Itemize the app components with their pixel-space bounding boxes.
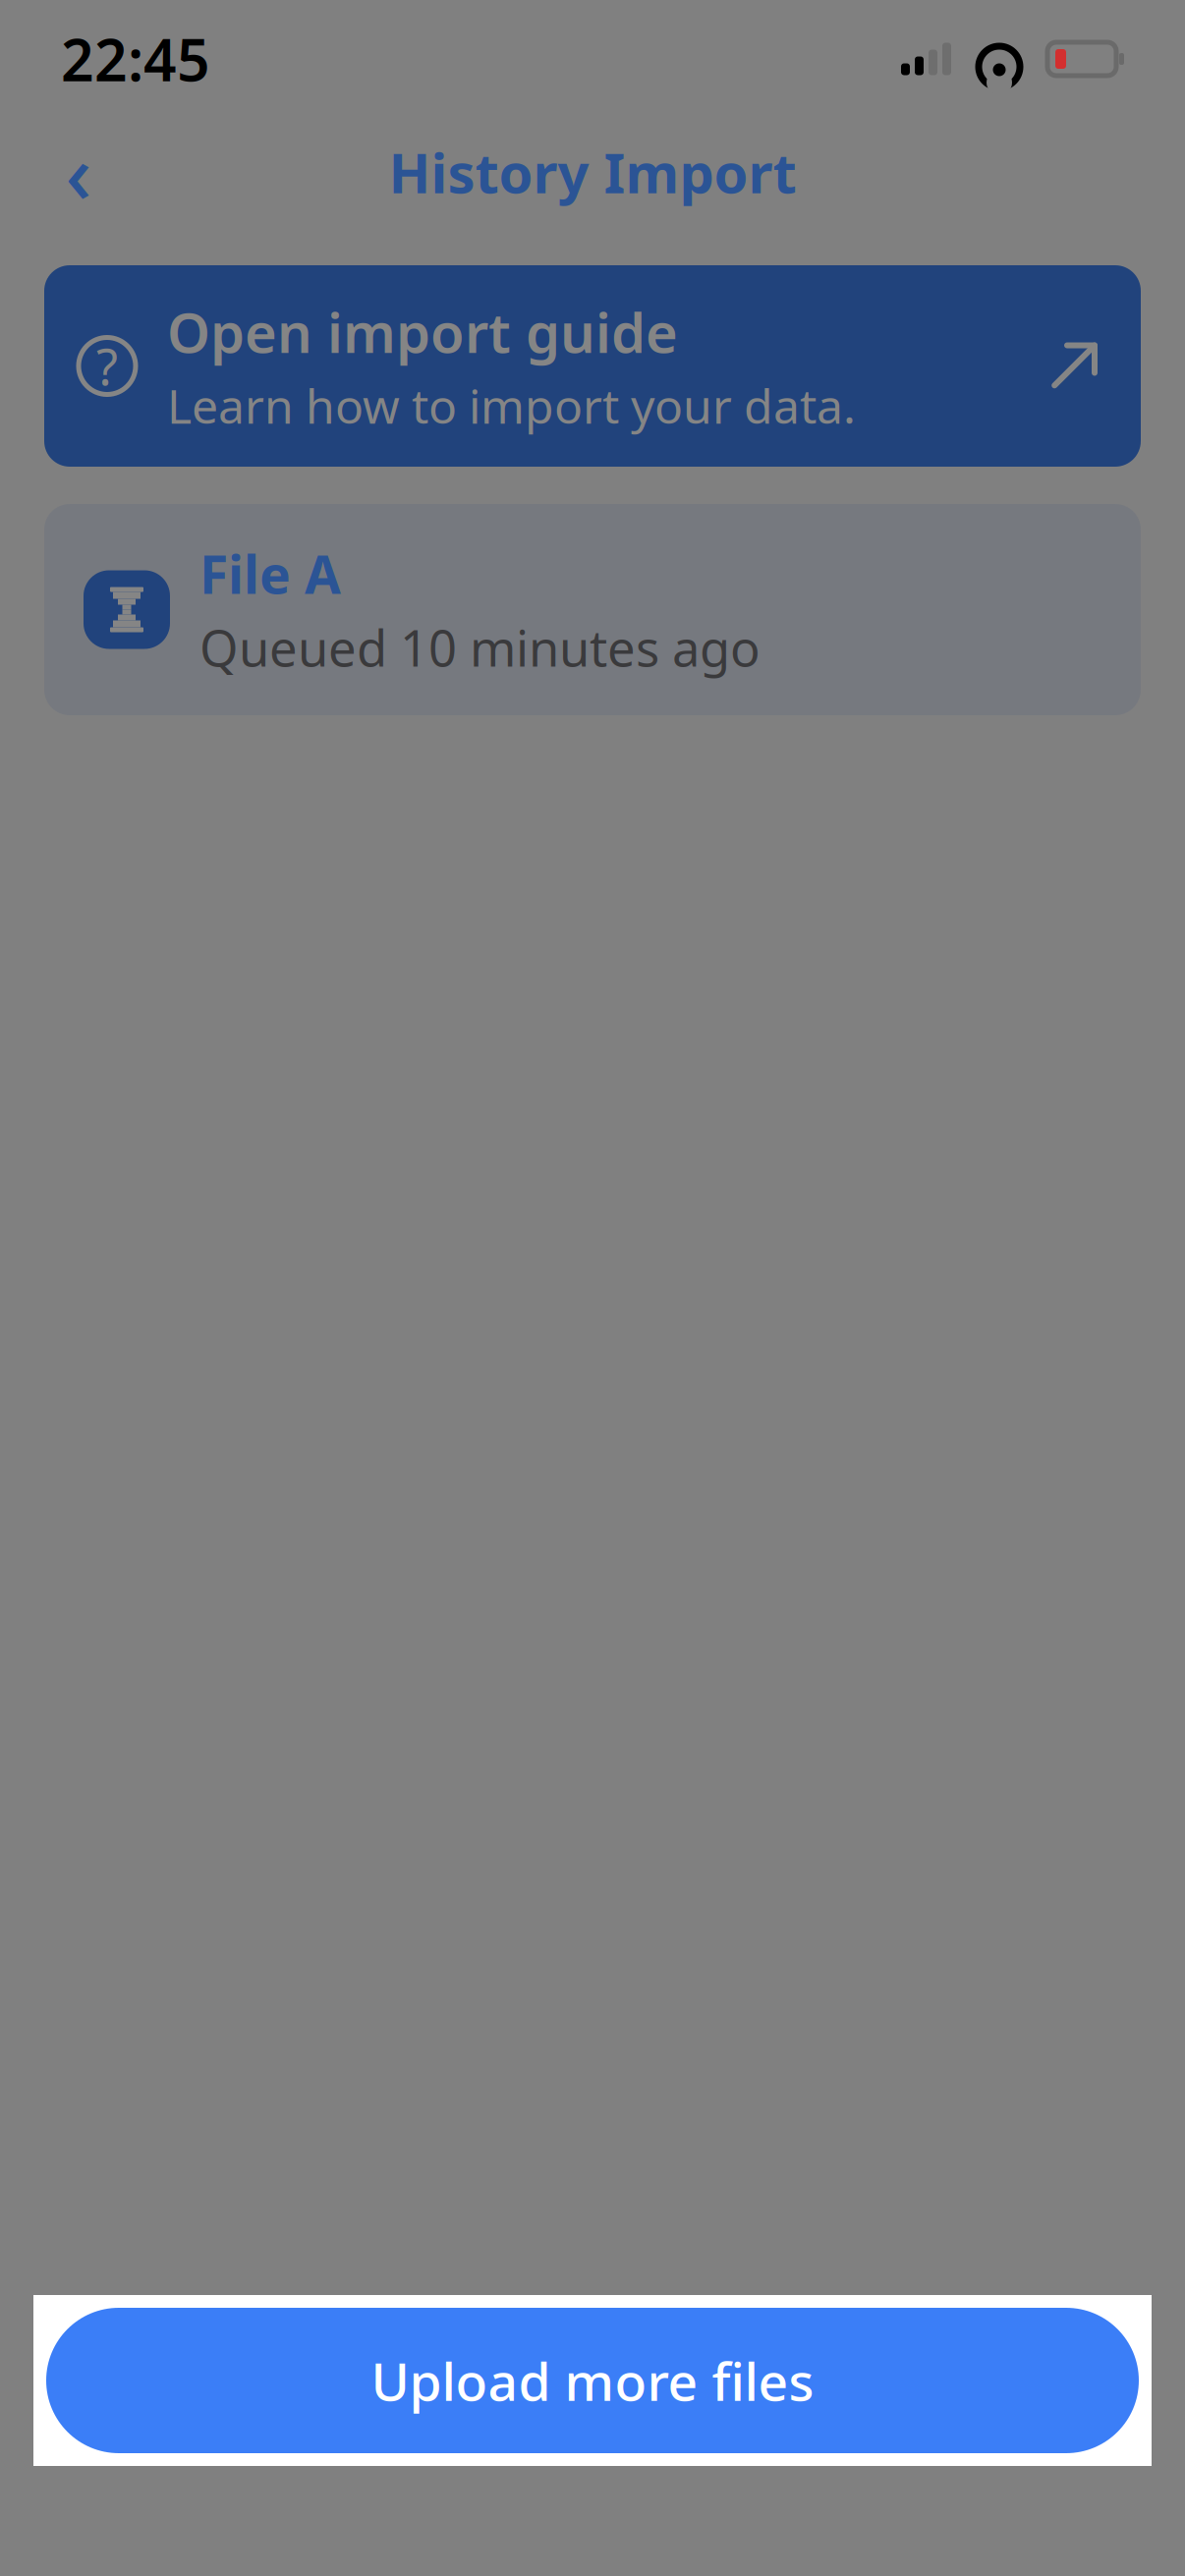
staticText: Learn how to import your data. xyxy=(167,374,856,437)
staticText: 22:45 xyxy=(61,21,210,97)
button[interactable]: ? xyxy=(44,265,1141,467)
button[interactable]: File A xyxy=(44,504,1141,715)
staticText: ? xyxy=(96,333,118,399)
staticText: Open import guide xyxy=(167,295,678,368)
button[interactable]: Back xyxy=(39,133,118,211)
staticText: File A xyxy=(199,539,341,608)
staticText: History Import xyxy=(389,135,796,208)
staticText: Queued 10 minutes ago xyxy=(199,614,761,680)
staticText: Upload more files xyxy=(371,2346,814,2415)
button[interactable]: Upload more files xyxy=(46,2308,1139,2453)
staticText: ‹ xyxy=(65,118,92,226)
